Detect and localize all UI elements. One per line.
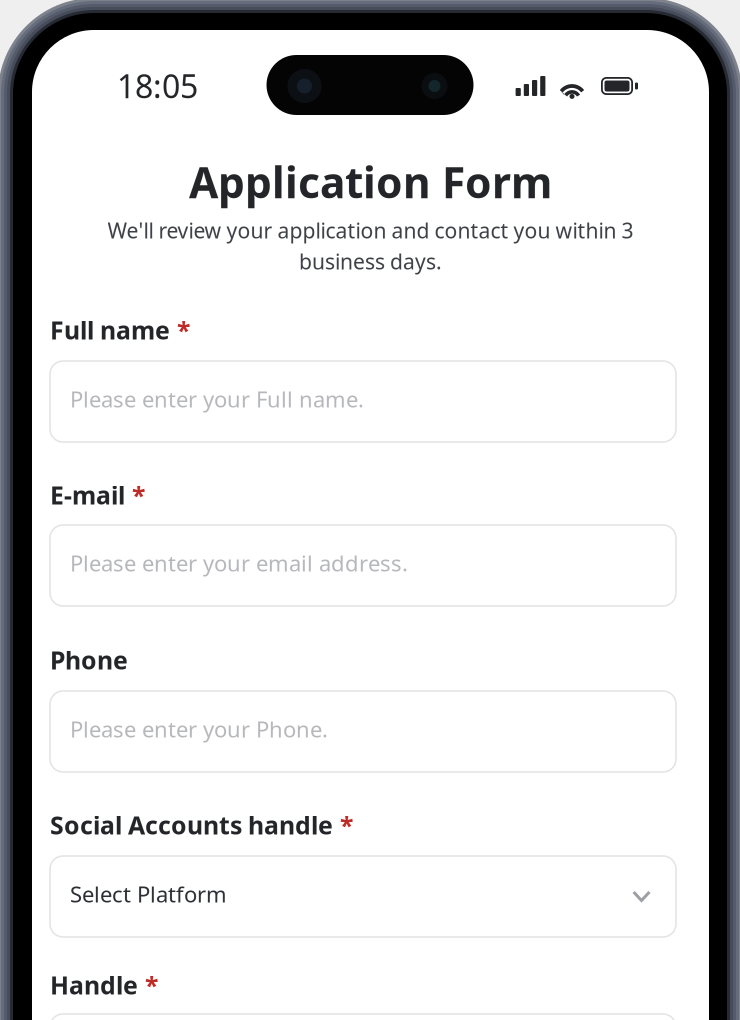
staticText: * <box>177 313 190 347</box>
staticText: Social Accounts handle <box>50 808 333 842</box>
staticText: Phone <box>50 643 128 677</box>
staticText: 18:05 <box>117 64 198 108</box>
staticText: * <box>340 808 353 842</box>
staticText: Please enter your Phone. <box>70 714 328 744</box>
button[interactable]: Select Platform <box>50 856 676 937</box>
staticText: Select Platform <box>70 879 227 909</box>
staticText: E-mail <box>50 478 125 512</box>
staticText: Please enter your Full name. <box>70 384 364 414</box>
staticText: Full name <box>50 313 170 347</box>
staticText: We'll review your application and contac… <box>107 216 633 245</box>
button[interactable]: Please enter your email address. <box>50 525 676 606</box>
staticText: * <box>145 968 158 1002</box>
button[interactable]: Please enter your handle. <box>50 1014 676 1020</box>
staticText: business days. <box>299 247 442 276</box>
staticText: * <box>132 478 145 512</box>
button[interactable]: Please enter your Phone. <box>50 691 676 772</box>
staticText: Handle <box>50 968 138 1002</box>
staticText: Application Form <box>189 153 552 211</box>
staticText: Please enter your email address. <box>70 548 408 578</box>
button[interactable]: Please enter your Full name. <box>50 361 676 442</box>
